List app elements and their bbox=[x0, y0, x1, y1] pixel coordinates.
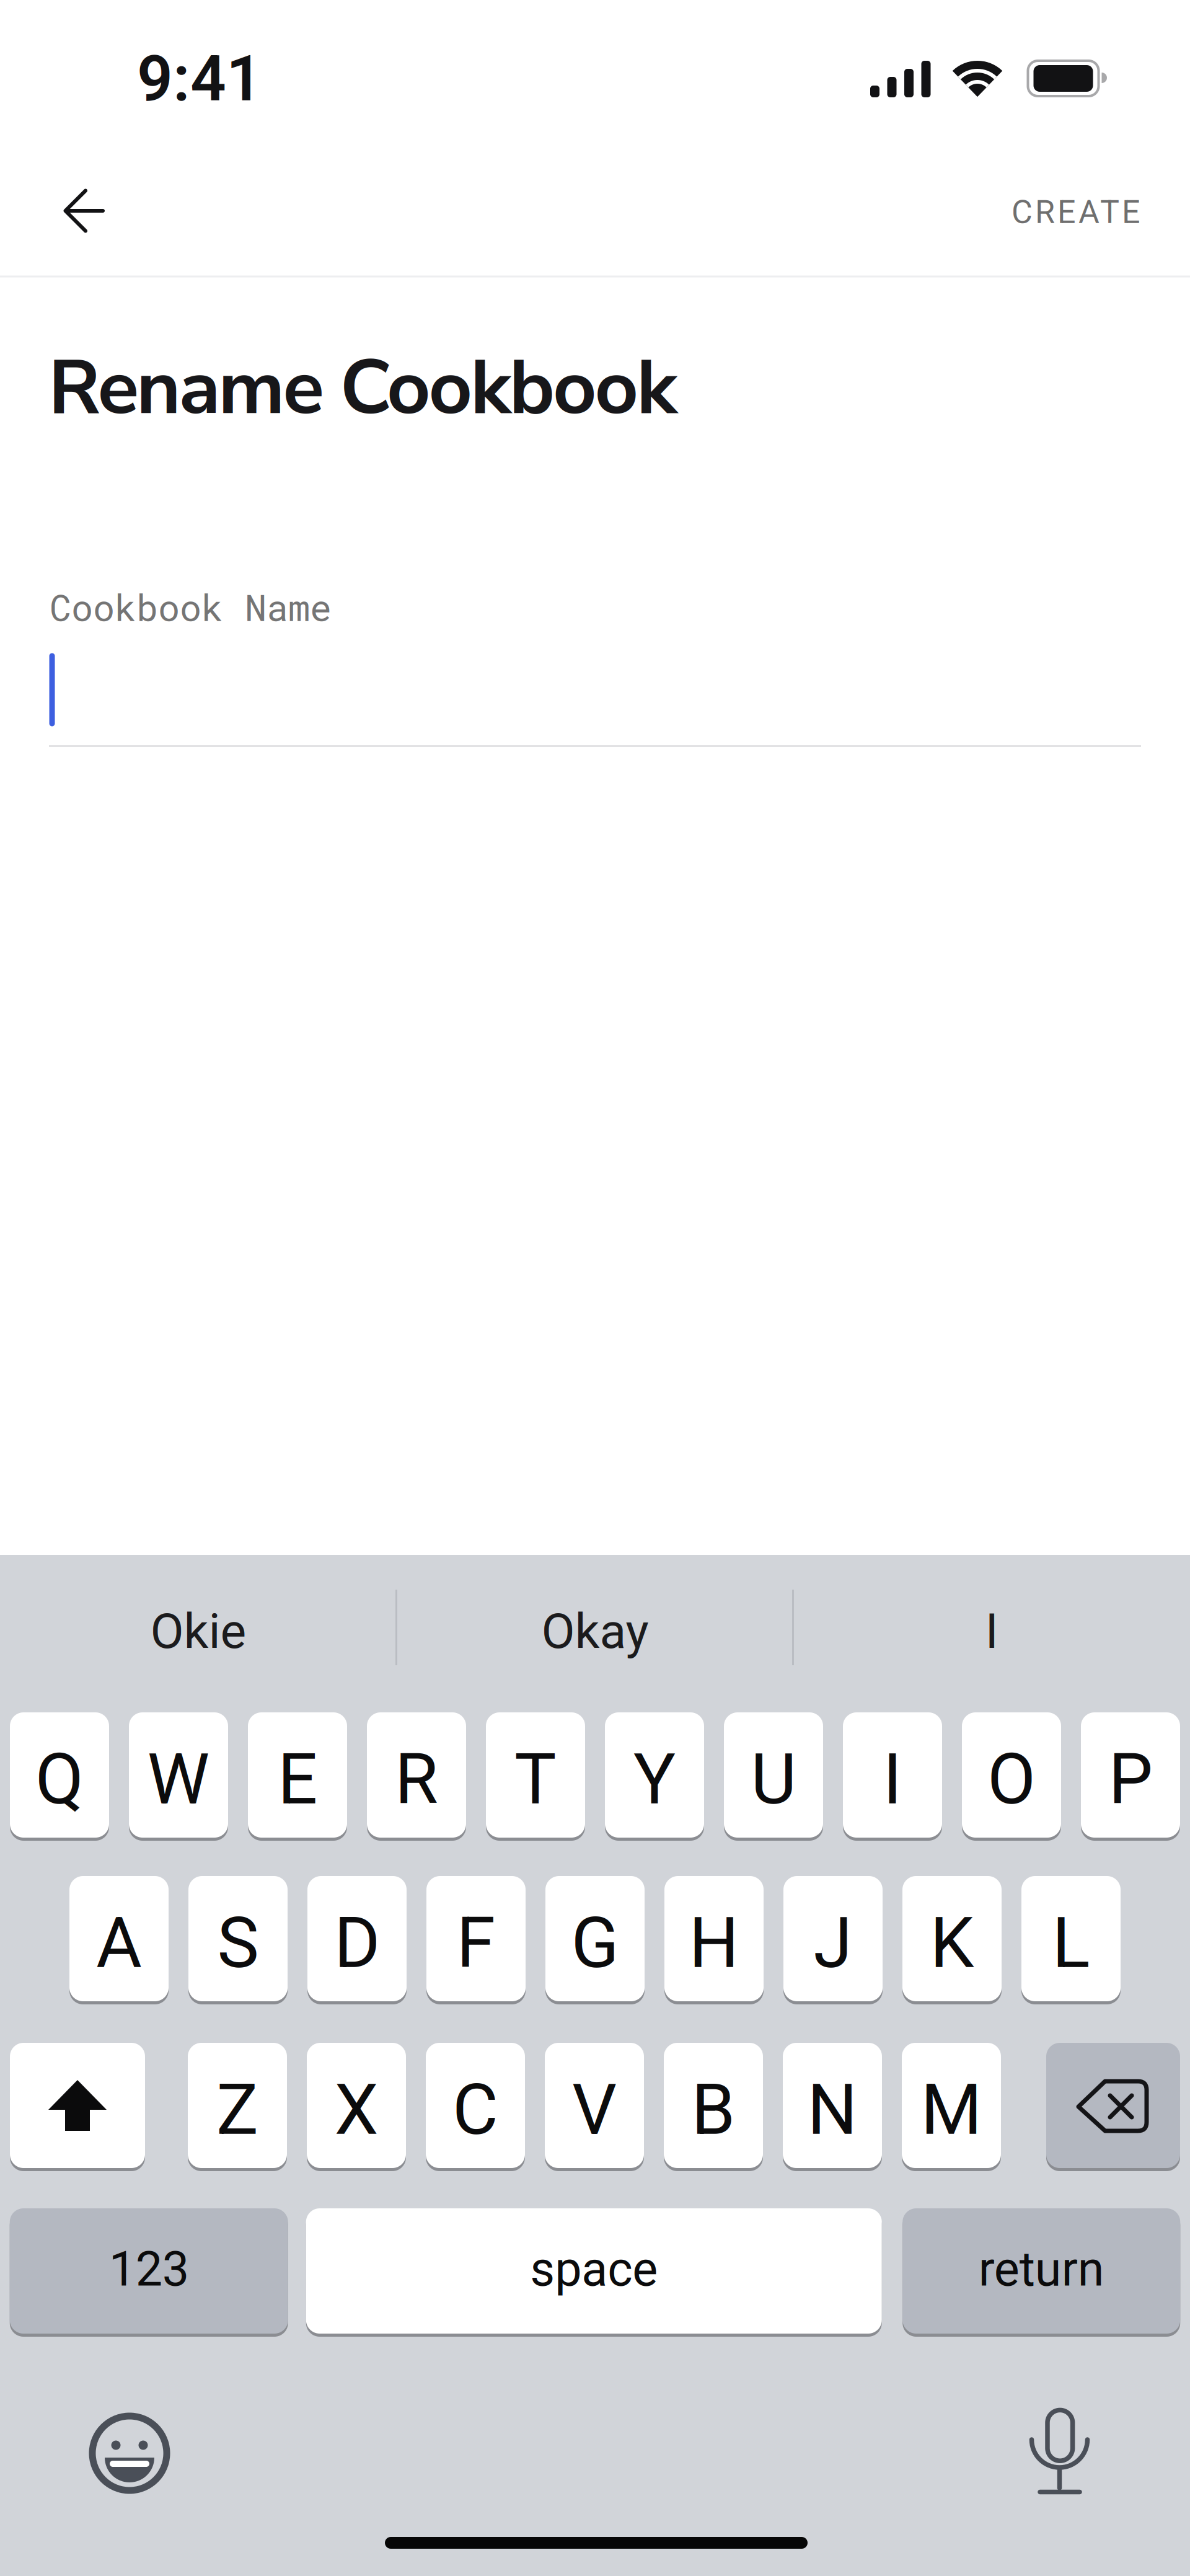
staticText: Cookbook Name bbox=[50, 583, 332, 631]
button[interactable]: Q bbox=[10, 1712, 109, 1838]
staticText: H bbox=[689, 1902, 739, 1984]
button[interactable]: Z bbox=[188, 2043, 287, 2168]
staticText: Okay bbox=[541, 1603, 649, 1660]
staticText: C bbox=[452, 2069, 498, 2151]
button[interactable]: F bbox=[426, 1876, 526, 2001]
staticText: M bbox=[921, 2069, 982, 2151]
button[interactable]: V bbox=[545, 2043, 644, 2168]
staticText: K bbox=[930, 1902, 974, 1984]
button[interactable]: K bbox=[902, 1876, 1002, 2001]
staticText: J bbox=[813, 1902, 853, 1984]
button[interactable]: H bbox=[664, 1876, 764, 2001]
button[interactable]: N bbox=[783, 2043, 882, 2168]
staticText: O bbox=[987, 1738, 1036, 1820]
button[interactable]: D bbox=[307, 1876, 407, 2001]
button[interactable]: Shift bbox=[10, 2043, 145, 2168]
button[interactable]: I bbox=[818, 1569, 1165, 1693]
button[interactable]: E bbox=[248, 1712, 347, 1838]
staticText: T bbox=[514, 1738, 557, 1820]
button[interactable]: Emoji bbox=[86, 2410, 173, 2497]
button[interactable]: W bbox=[129, 1712, 228, 1838]
button[interactable]: CREATE bbox=[1011, 193, 1140, 231]
button[interactable]: G bbox=[545, 1876, 645, 2001]
button[interactable]: Cookbook Name bbox=[0, 555, 1190, 753]
staticText: 9:41 bbox=[137, 42, 262, 116]
staticText: CREATE bbox=[1011, 193, 1140, 231]
staticText: Q bbox=[35, 1738, 84, 1820]
staticText: Okie bbox=[150, 1603, 246, 1660]
staticText: S bbox=[217, 1902, 259, 1984]
staticText: B bbox=[691, 2069, 735, 2151]
button[interactable]: X bbox=[307, 2043, 406, 2168]
staticText: I bbox=[883, 1738, 902, 1820]
button[interactable]: space bbox=[306, 2208, 882, 2334]
button[interactable]: L bbox=[1021, 1876, 1121, 2001]
button[interactable]: R bbox=[367, 1712, 466, 1838]
button[interactable]: Dictation bbox=[1010, 2399, 1109, 2499]
staticText: R bbox=[395, 1738, 438, 1820]
staticText: X bbox=[334, 2069, 378, 2151]
staticText: 123 bbox=[109, 2241, 189, 2297]
button[interactable]: Back bbox=[48, 167, 135, 254]
staticText: I bbox=[985, 1603, 998, 1660]
staticText: L bbox=[1052, 1902, 1090, 1984]
button[interactable]: T bbox=[486, 1712, 585, 1838]
staticText: space bbox=[530, 2241, 658, 2297]
button[interactable]: Y bbox=[605, 1712, 704, 1838]
button[interactable]: P bbox=[1081, 1712, 1180, 1838]
staticText: return bbox=[979, 2241, 1104, 2297]
button[interactable]: M bbox=[902, 2043, 1001, 2168]
staticText: G bbox=[571, 1902, 619, 1984]
button[interactable]: J bbox=[783, 1876, 883, 2001]
staticText: U bbox=[751, 1738, 796, 1820]
button[interactable]: B bbox=[664, 2043, 763, 2168]
button[interactable]: 123 bbox=[10, 2208, 288, 2334]
button[interactable]: I bbox=[843, 1712, 942, 1838]
staticText: Z bbox=[216, 2069, 258, 2151]
button[interactable]: O bbox=[962, 1712, 1061, 1838]
button[interactable]: C bbox=[426, 2043, 525, 2168]
staticText: A bbox=[96, 1902, 142, 1984]
button[interactable]: Delete bbox=[1046, 2043, 1180, 2168]
button[interactable]: Okie bbox=[25, 1569, 372, 1693]
button[interactable]: U bbox=[724, 1712, 823, 1838]
button[interactable]: S bbox=[188, 1876, 288, 2001]
button[interactable]: Okay bbox=[421, 1569, 769, 1693]
staticText: Y bbox=[633, 1738, 676, 1820]
staticText: Rename Cookbook bbox=[48, 336, 677, 440]
staticText: W bbox=[147, 1738, 210, 1820]
staticText: E bbox=[278, 1738, 317, 1820]
button[interactable]: A bbox=[69, 1876, 169, 2001]
button[interactable]: return bbox=[903, 2208, 1180, 2334]
staticText: V bbox=[572, 2069, 617, 2151]
staticText: F bbox=[456, 1902, 496, 1984]
staticText: N bbox=[807, 2069, 857, 2151]
staticText: D bbox=[334, 1902, 380, 1984]
staticText: P bbox=[1108, 1738, 1153, 1820]
